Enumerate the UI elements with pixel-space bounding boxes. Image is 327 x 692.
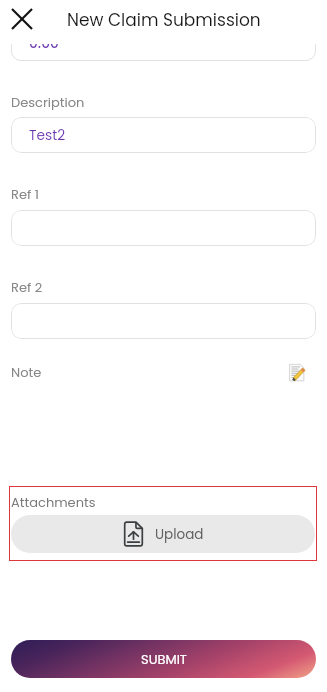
staticText: SUBMIT bbox=[141, 650, 187, 668]
staticText: Attachments bbox=[11, 493, 96, 511]
staticText: Test2 bbox=[29, 126, 66, 145]
staticText: Description bbox=[11, 93, 85, 111]
staticText: Upload bbox=[155, 525, 204, 544]
staticText: Ref 2 bbox=[11, 278, 43, 296]
button[interactable]: Edit note bbox=[289, 363, 304, 381]
button[interactable]: SUBMIT bbox=[11, 640, 316, 678]
button[interactable] bbox=[11, 303, 316, 339]
button[interactable]: Test2 bbox=[11, 117, 316, 153]
staticText: Note bbox=[11, 363, 42, 381]
staticText: New Claim Submission bbox=[67, 8, 261, 32]
button[interactable] bbox=[11, 210, 316, 246]
button[interactable]: Upload bbox=[11, 515, 315, 553]
staticText: Ref 1 bbox=[11, 185, 39, 203]
button[interactable]: Close bbox=[7, 4, 37, 34]
staticText: 0.00 bbox=[29, 34, 59, 53]
